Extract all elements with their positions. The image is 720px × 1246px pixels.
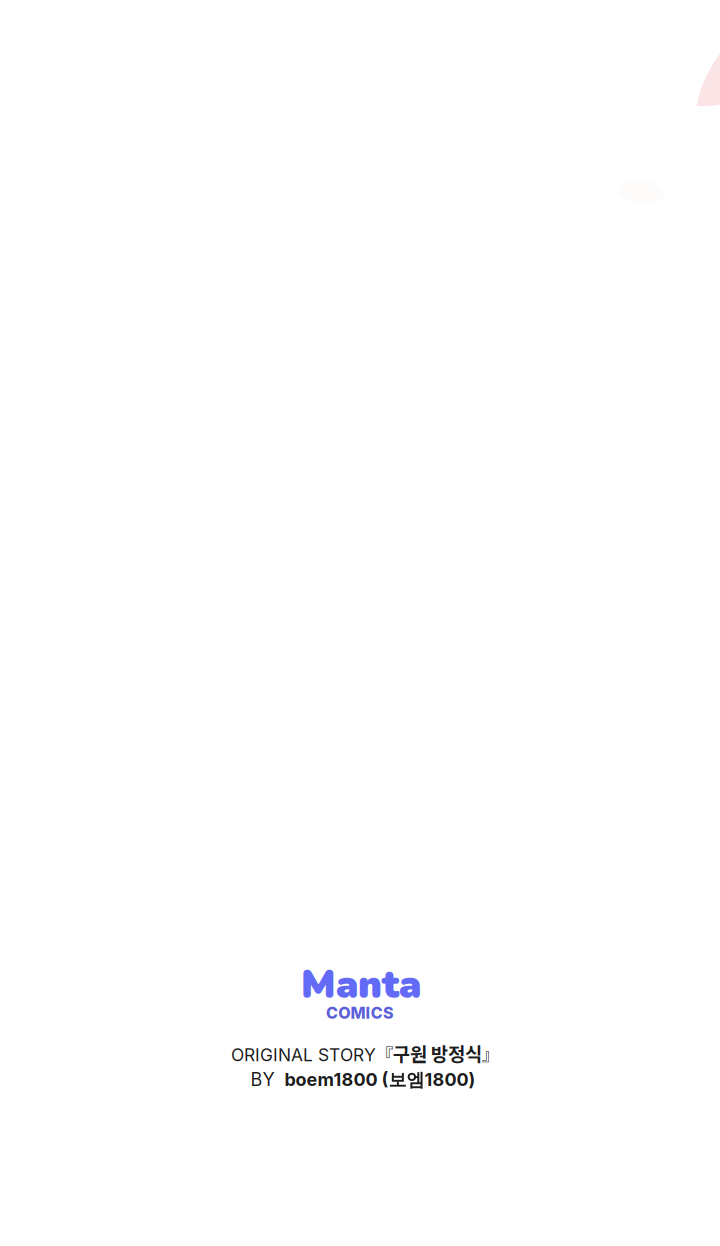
staticText: BY boem1800 (보엠1800) bbox=[250, 1069, 475, 1091]
staticText: Manta bbox=[301, 959, 421, 1011]
staticText: COMICS bbox=[326, 1003, 394, 1023]
staticText: ORIGINAL STORY『구원 방정식』 bbox=[231, 1040, 499, 1066]
button[interactable]: Show reader controls bbox=[0, 0, 720, 1246]
